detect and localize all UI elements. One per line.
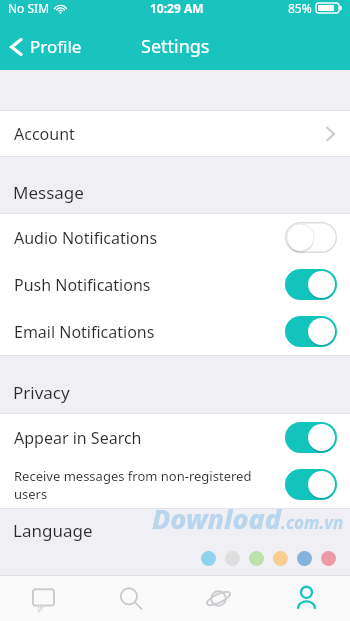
button[interactable]: Toggle on [285,269,337,300]
button[interactable]: Toggle on [285,316,337,347]
button[interactable]: Email Notifications [0,308,350,355]
button[interactable]: Chats [0,576,87,621]
staticText: Receive messages from non-registered use… [14,467,285,503]
staticText: Download [152,500,281,537]
staticText: Language [13,519,93,542]
button[interactable]: Search [87,576,174,621]
button[interactable]: Appear in Search [0,414,350,461]
button[interactable]: Audio Notifications [0,214,350,261]
staticText: Message [13,181,84,204]
button[interactable]: Toggle off [285,222,337,253]
staticText: .com.vn [281,511,344,534]
button[interactable]: Profile [262,576,350,621]
staticText: Profile [30,35,82,58]
staticText: Push Notifications [14,274,151,296]
staticText: Audio Notifications [14,227,158,249]
staticText: 85% [288,0,312,16]
button[interactable]: Account [0,111,350,156]
button[interactable]: Explore [174,576,262,621]
button[interactable]: Profile [0,29,94,64]
staticText: Appear in Search [14,427,142,449]
staticText: Email Notifications [14,321,155,343]
button[interactable]: Receive messages from non-registered use… [0,461,350,508]
staticText: Settings [141,34,210,59]
button[interactable]: Toggle on [285,422,337,453]
staticText: No SIM [8,0,50,16]
staticText: Account [14,123,75,145]
button[interactable]: Toggle on [285,469,337,500]
staticText: Privacy [13,381,70,404]
staticText: 10:29 AM [150,0,204,16]
button[interactable]: Push Notifications [0,261,350,308]
